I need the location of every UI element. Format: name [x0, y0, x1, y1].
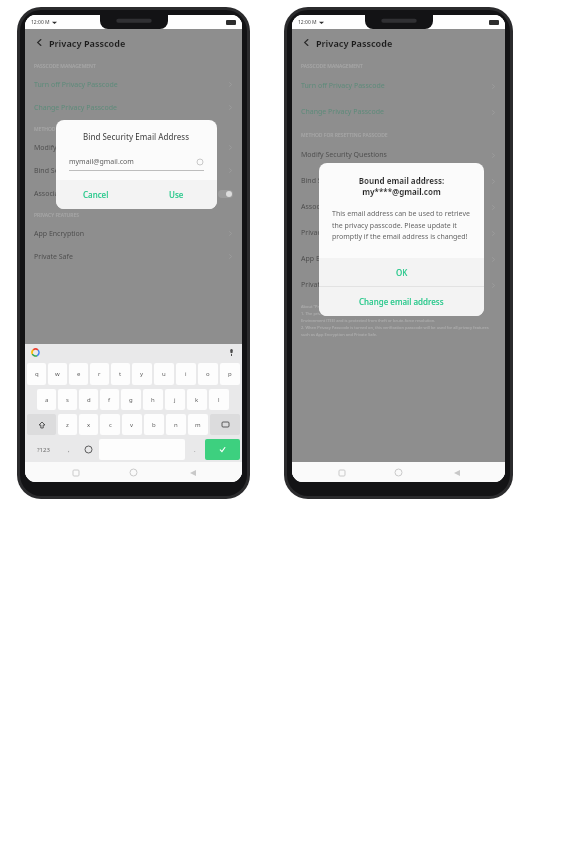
- staticText: METHOD FOR RESETTING PASSCODE: [34, 126, 121, 133]
- button[interactable]: Home: [125, 464, 142, 481]
- button[interactable]: a: [37, 389, 56, 410]
- staticText: w: [55, 370, 60, 378]
- button[interactable]: Bind Security Email Address: [25, 159, 242, 182]
- button[interactable]: t: [111, 363, 130, 385]
- button[interactable]: v: [122, 414, 142, 435]
- button[interactable]: App Encryption: [25, 222, 242, 245]
- button[interactable]: Turn off Privacy Passcode: [292, 73, 505, 99]
- staticText: l: [218, 396, 220, 404]
- button[interactable]: Shift: [27, 414, 56, 435]
- button[interactable]: ?123: [27, 439, 59, 460]
- button[interactable]: l: [209, 389, 229, 410]
- button[interactable]: Enter: [205, 439, 240, 460]
- button[interactable]: Clear: [196, 158, 204, 166]
- button[interactable]: Use: [136, 180, 217, 209]
- button[interactable]: z: [58, 414, 77, 435]
- staticText: Private Safe: [34, 252, 73, 262]
- staticText: a: [45, 396, 49, 404]
- button[interactable]: x: [79, 414, 98, 435]
- staticText: p: [228, 370, 232, 378]
- staticText: Modify Security Questions: [34, 143, 120, 153]
- staticText: Private Safe: [301, 280, 340, 290]
- button[interactable]: m: [188, 414, 208, 435]
- staticText: 12:00 M: [298, 19, 317, 26]
- staticText: m: [195, 421, 201, 429]
- button[interactable]: o: [198, 363, 218, 385]
- button[interactable]: Recents: [67, 464, 84, 481]
- button[interactable]: Change email address: [319, 287, 484, 316]
- button[interactable]: Associate OPPO ID: [25, 182, 242, 205]
- button[interactable]: d: [79, 389, 98, 410]
- button[interactable]: j: [165, 389, 185, 410]
- staticText: This email address can be used to retrie…: [332, 209, 471, 241]
- button[interactable]: Associate OPPO ID: [292, 194, 505, 220]
- button[interactable]: App Encryption: [292, 246, 505, 272]
- button[interactable]: c: [100, 414, 120, 435]
- button[interactable]: Back: [448, 464, 465, 481]
- button[interactable]: Google: [31, 348, 40, 357]
- button[interactable]: Private Safe: [25, 245, 242, 268]
- button[interactable]: Back: [184, 464, 201, 481]
- button[interactable]: p: [220, 363, 240, 385]
- staticText: PRIVACY FEATURES: [34, 212, 79, 219]
- button[interactable]: q: [27, 363, 46, 385]
- button[interactable]: Emoji: [78, 437, 98, 462]
- button[interactable]: Change Privacy Passcode: [292, 99, 505, 125]
- button[interactable]: Modify Security Questions: [25, 136, 242, 159]
- staticText: Privacy Passcode: [49, 37, 126, 49]
- button[interactable]: Backspace: [210, 414, 240, 435]
- button[interactable]: Cancel: [56, 180, 136, 209]
- button[interactable]: i: [176, 363, 196, 385]
- staticText: h: [151, 396, 155, 404]
- staticText: f: [108, 396, 111, 404]
- button[interactable]: ,: [60, 437, 78, 462]
- button[interactable]: Back: [300, 36, 313, 49]
- button[interactable]: u: [154, 363, 174, 385]
- staticText: Use: [169, 189, 184, 200]
- staticText: .: [194, 446, 196, 454]
- staticText: Turn off Privacy Passcode: [34, 80, 118, 90]
- button[interactable]: e: [69, 363, 88, 385]
- button[interactable]: w: [48, 363, 67, 385]
- button[interactable]: y: [132, 363, 152, 385]
- button[interactable]: r: [90, 363, 109, 385]
- staticText: x: [87, 421, 91, 429]
- button[interactable]: b: [144, 414, 164, 435]
- button[interactable]: h: [143, 389, 163, 410]
- button[interactable]: Turn off Privacy Passcode: [25, 73, 242, 96]
- button[interactable]: k: [187, 389, 207, 410]
- staticText: i: [185, 370, 187, 378]
- staticText: ,: [68, 446, 70, 454]
- button[interactable]: s: [58, 389, 77, 410]
- staticText: v: [130, 421, 134, 429]
- staticText: b: [152, 421, 156, 429]
- staticText: y: [140, 370, 144, 378]
- button[interactable]: Privacy Features: [292, 220, 505, 246]
- staticText: Modify Security Questions: [301, 150, 387, 160]
- button[interactable]: Bind Security Email Address: [292, 168, 505, 194]
- button[interactable]: n: [166, 414, 186, 435]
- staticText: PASSCODE MANAGEMENT: [301, 63, 363, 70]
- staticText: Privacy Passcode: [316, 37, 393, 49]
- button[interactable]: Private Safe: [292, 272, 505, 298]
- staticText: OK: [396, 267, 408, 278]
- staticText: Change Privacy Passcode: [34, 103, 117, 113]
- staticText: 12:00 M: [31, 19, 50, 26]
- button[interactable]: Change Privacy Passcode: [25, 96, 242, 119]
- staticText: o: [206, 370, 210, 378]
- staticText: mymail@gmail.com: [69, 157, 134, 167]
- button[interactable]: Home: [390, 464, 407, 481]
- staticText: METHOD FOR RESETTING PASSCODE: [301, 132, 388, 139]
- button[interactable]: OK: [319, 258, 484, 286]
- staticText: u: [162, 370, 166, 378]
- staticText: t: [119, 370, 122, 378]
- button[interactable]: Modify Security Questions: [292, 142, 505, 168]
- button[interactable]: f: [100, 389, 119, 410]
- button[interactable]: g: [121, 389, 141, 410]
- button[interactable]: Voice input: [227, 348, 236, 357]
- button[interactable]: Recents: [333, 464, 350, 481]
- staticText: Cancel: [83, 189, 109, 200]
- button[interactable]: Back: [33, 36, 46, 49]
